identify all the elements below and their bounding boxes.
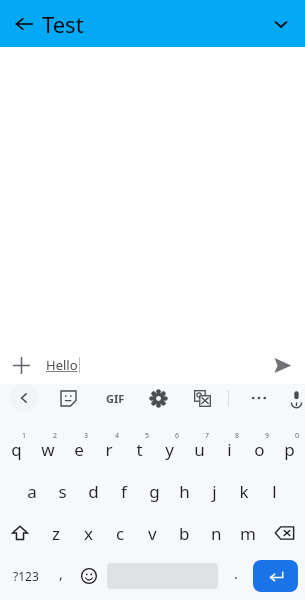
staticText: Hello xyxy=(46,356,78,374)
button[interactable]: r xyxy=(94,428,124,470)
button[interactable]: y xyxy=(154,428,184,470)
staticText: x xyxy=(84,522,93,545)
button[interactable]: , xyxy=(47,556,75,596)
button[interactable]: g xyxy=(139,470,169,512)
button[interactable]: s xyxy=(47,470,78,512)
staticText: 5 xyxy=(145,431,150,441)
staticText: u xyxy=(194,438,205,461)
button[interactable]: . xyxy=(222,556,250,596)
button[interactable]: Shift xyxy=(0,512,40,554)
staticText: f xyxy=(121,480,127,503)
staticText: t xyxy=(136,438,143,461)
staticText: v xyxy=(148,522,157,545)
button[interactable]: i xyxy=(214,428,244,470)
button[interactable]: z xyxy=(40,512,72,554)
button[interactable]: q xyxy=(1,428,32,470)
staticText: p xyxy=(284,438,295,461)
button[interactable]: e xyxy=(63,428,94,470)
staticText: e xyxy=(74,438,84,461)
staticText: 4 xyxy=(115,431,120,441)
staticText: . xyxy=(234,564,238,583)
button[interactable]: Emoji xyxy=(75,556,103,596)
button[interactable]: p xyxy=(274,428,304,470)
button[interactable]: x xyxy=(72,512,104,554)
button[interactable]: b xyxy=(168,512,200,554)
button[interactable]: Voice input xyxy=(287,384,305,412)
button[interactable]: Backspace xyxy=(264,512,305,554)
staticText: q xyxy=(11,438,22,461)
button[interactable]: Translate xyxy=(188,384,216,412)
staticText: 8 xyxy=(235,431,240,441)
button[interactable]: Stickers xyxy=(54,384,82,412)
staticText: , xyxy=(59,564,63,583)
button[interactable]: j xyxy=(199,470,229,512)
staticText: a xyxy=(27,480,37,503)
staticText: c xyxy=(116,522,125,545)
button[interactable]: h xyxy=(169,470,199,512)
staticText: z xyxy=(52,522,60,545)
staticText: 0 xyxy=(295,431,300,441)
staticText: w xyxy=(41,438,55,461)
staticText: 6 xyxy=(175,431,180,441)
staticText: 3 xyxy=(84,431,89,441)
button[interactable]: Settings xyxy=(144,384,172,412)
button[interactable]: Back xyxy=(8,8,40,40)
button[interactable]: l xyxy=(259,470,289,512)
button[interactable]: m xyxy=(232,512,264,554)
staticText: g xyxy=(149,480,160,503)
staticText: h xyxy=(179,480,190,503)
staticText: d xyxy=(88,480,99,503)
staticText: 9 xyxy=(265,431,270,441)
staticText: m xyxy=(240,522,256,545)
staticText: Test xyxy=(42,9,84,39)
staticText: i xyxy=(227,438,232,461)
staticText: r xyxy=(105,438,113,461)
button[interactable]: n xyxy=(200,512,232,554)
staticText: ?123 xyxy=(13,568,39,584)
button[interactable]: w xyxy=(32,428,63,470)
button[interactable]: Expand xyxy=(265,8,297,40)
button[interactable]: d xyxy=(78,470,109,512)
staticText: 2 xyxy=(53,431,58,441)
button[interactable]: u xyxy=(184,428,214,470)
button[interactable]: t xyxy=(124,428,154,470)
staticText: j xyxy=(212,480,217,503)
button[interactable]: f xyxy=(109,470,139,512)
staticText: y xyxy=(165,438,174,461)
staticText: GIF xyxy=(106,391,125,406)
staticText: n xyxy=(211,522,222,545)
button[interactable]: Back xyxy=(10,384,38,412)
staticText: 7 xyxy=(205,431,210,441)
button[interactable]: v xyxy=(136,512,168,554)
staticText: b xyxy=(179,522,190,545)
button[interactable]: a xyxy=(16,470,47,512)
button[interactable]: Send xyxy=(267,350,297,380)
button[interactable]: ?123 xyxy=(4,556,47,596)
staticText: 1 xyxy=(22,431,27,441)
staticText: l xyxy=(272,480,277,503)
staticText: o xyxy=(254,438,265,461)
button[interactable]: o xyxy=(244,428,274,470)
staticText: k xyxy=(239,480,249,503)
button[interactable]: k xyxy=(229,470,259,512)
button[interactable]: Add attachment xyxy=(6,350,36,380)
staticText: s xyxy=(58,480,67,503)
button[interactable]: Enter xyxy=(253,560,298,592)
button[interactable]: GIF xyxy=(100,384,130,412)
button[interactable]: c xyxy=(104,512,136,554)
button[interactable]: More options xyxy=(245,384,273,412)
